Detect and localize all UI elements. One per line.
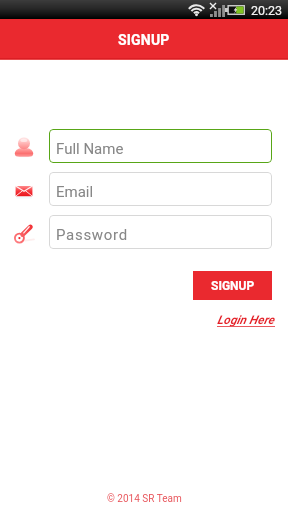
staticText: SIGNUP — [211, 279, 255, 293]
other: Battery charging — [225, 5, 245, 15]
other: Mobile signal strength — [210, 5, 225, 17]
staticText: Email — [56, 183, 94, 201]
staticText: SIGNUP — [118, 32, 170, 48]
button[interactable]: Login Here — [217, 313, 275, 327]
other: Wi-Fi connected — [188, 3, 205, 16]
other: No mobile data — [209, 2, 217, 10]
button[interactable]: SIGNUP — [193, 271, 272, 300]
staticText: Login Here — [217, 313, 275, 327]
button[interactable]: Full Name — [49, 129, 272, 163]
button[interactable]: Password — [49, 215, 272, 249]
staticText: Password — [56, 226, 128, 244]
button[interactable]: Email — [49, 172, 272, 206]
staticText: Full Name — [56, 140, 124, 158]
staticText: © 2014 SR Team — [107, 493, 182, 505]
staticText: 20:23 — [251, 3, 283, 18]
